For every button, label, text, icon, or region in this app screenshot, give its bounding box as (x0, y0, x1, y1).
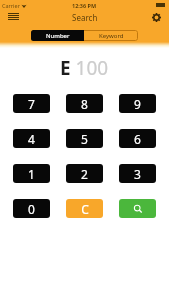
button[interactable]: Settings (148, 9, 164, 25)
button[interactable]: C (66, 199, 103, 218)
button[interactable]: 7 (13, 94, 50, 113)
button[interactable]: 6 (119, 129, 156, 148)
button[interactable]: Number (31, 30, 84, 41)
button[interactable]: Keyword (84, 30, 138, 41)
staticText: Search (72, 12, 98, 23)
staticText: C (81, 201, 89, 217)
button[interactable]: 8 (66, 94, 103, 113)
staticText: Keyword (99, 32, 124, 40)
staticText: 4 (28, 131, 35, 147)
staticText: 12:36 PM (72, 2, 97, 9)
staticText: 8 (81, 96, 88, 112)
staticText: 1 (28, 166, 35, 182)
button[interactable]: 0 (13, 199, 50, 218)
button[interactable]: 1 (13, 164, 50, 183)
staticText: Number (46, 32, 70, 40)
button[interactable]: 9 (119, 94, 156, 113)
button[interactable]: 2 (66, 164, 103, 183)
staticText: 0 (28, 201, 35, 217)
staticText: 7 (28, 96, 35, 112)
staticText: Carrier (2, 2, 20, 9)
button[interactable]: Search (119, 199, 156, 218)
button[interactable]: Menu (4, 8, 22, 26)
staticText: E 100 (60, 55, 109, 81)
staticText: 2 (81, 166, 88, 182)
staticText: 5 (81, 131, 88, 147)
button[interactable]: 5 (66, 129, 103, 148)
staticText: 3 (134, 166, 141, 182)
button[interactable]: 3 (119, 164, 156, 183)
staticText: 6 (134, 131, 141, 147)
staticText: 9 (134, 96, 141, 112)
button[interactable]: 4 (13, 129, 50, 148)
